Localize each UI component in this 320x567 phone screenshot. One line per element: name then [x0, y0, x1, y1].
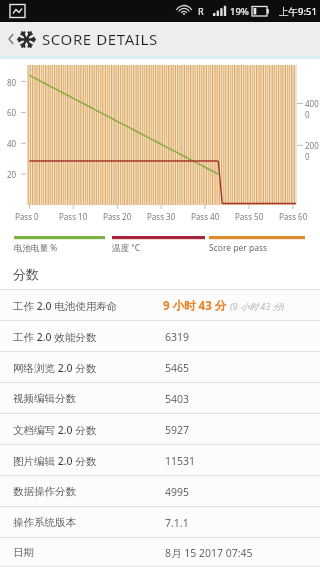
- staticText: Pass 40: [191, 211, 220, 222]
- staticText: 8月 15 2017 07:45: [165, 546, 253, 560]
- staticText: 4000: [305, 98, 320, 120]
- button[interactable]: 数据操作分数: [0, 476, 320, 507]
- button[interactable]: 日期: [0, 538, 320, 567]
- staticText: (9 小时 43 分): [230, 300, 285, 312]
- button[interactable]: 图片编辑 2.0 分数: [0, 445, 320, 476]
- button[interactable]: Back: [0, 22, 320, 56]
- button[interactable]: 操作系统版本: [0, 507, 320, 538]
- staticText: 操作系统版本: [13, 516, 76, 529]
- staticText: 11531: [165, 454, 196, 468]
- staticText: 40: [7, 138, 17, 149]
- staticText: SCORE DETAILS: [42, 29, 158, 49]
- staticText: 工作 2.0 效能分数: [13, 330, 97, 344]
- staticText: 网络浏览 2.0 分数: [13, 361, 97, 375]
- staticText: Pass 50: [235, 211, 264, 222]
- staticText: 4995: [165, 485, 190, 499]
- staticText: 2000: [305, 140, 320, 162]
- staticText: 7.1.1: [165, 516, 189, 530]
- button[interactable]: 网络浏览 2.0 分数: [0, 352, 320, 383]
- button[interactable]: 视频编辑分数: [0, 383, 320, 414]
- staticText: 日期: [13, 546, 34, 559]
- other: Back: [6, 30, 16, 48]
- staticText: 19%: [230, 5, 249, 18]
- staticText: Score per pass: [209, 242, 268, 254]
- staticText: 5403: [165, 392, 190, 406]
- staticText: 60: [7, 107, 17, 118]
- staticText: 6319: [165, 330, 190, 344]
- button[interactable]: 工作 2.0 效能分数: [0, 321, 320, 352]
- staticText: 文档编写 2.0 分数: [13, 423, 97, 437]
- staticText: 温度 °C: [112, 242, 141, 254]
- staticText: 20: [7, 169, 17, 180]
- staticText: R: [198, 5, 204, 17]
- staticText: Pass 20: [103, 211, 132, 222]
- staticText: 上午9:51: [279, 5, 317, 18]
- staticText: 电池电量 %: [14, 242, 58, 254]
- staticText: 分数: [13, 266, 39, 282]
- button[interactable]: 工作 2.0 电池使用寿命: [0, 290, 320, 321]
- staticText: 5465: [165, 361, 190, 375]
- staticText: 80: [7, 77, 17, 88]
- staticText: Pass 10: [59, 211, 88, 222]
- staticText: Pass 0: [15, 211, 39, 222]
- staticText: 9 小时 43 分: [163, 298, 227, 314]
- button[interactable]: 文档编写 2.0 分数: [0, 414, 320, 445]
- staticText: 数据操作分数: [13, 485, 76, 498]
- staticText: 5927: [165, 423, 190, 437]
- staticText: 视频编辑分数: [13, 392, 76, 405]
- staticText: 图片编辑 2.0 分数: [13, 454, 97, 468]
- staticText: 工作 2.0 电池使用寿命: [13, 299, 118, 313]
- staticText: Pass 30: [147, 211, 176, 222]
- staticText: Pass 60: [279, 211, 308, 222]
